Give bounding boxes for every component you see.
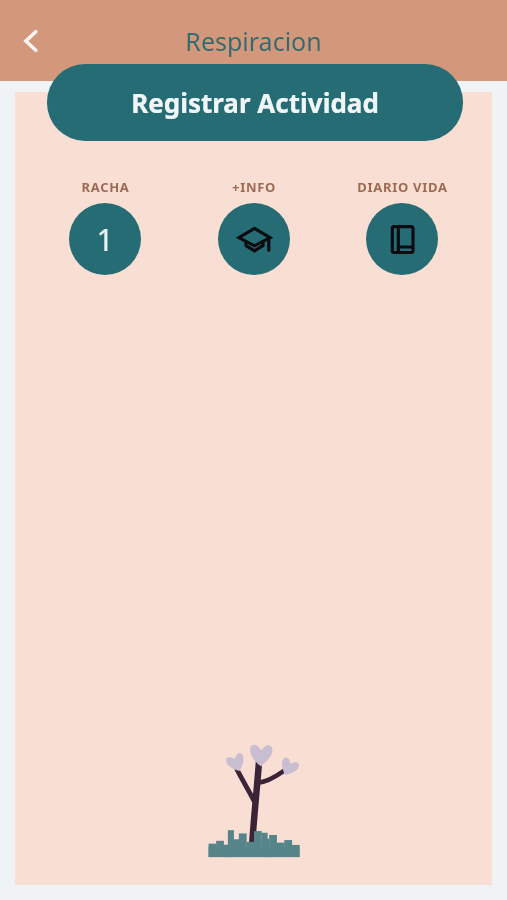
staticText: Respiracion [185,24,322,58]
staticText: DIARIO VIDA [357,178,448,196]
button[interactable]: +INFO [194,178,314,275]
staticText: 1 [96,219,114,260]
staticText: RACHA [81,178,130,196]
button[interactable]: RACHA [45,178,165,275]
staticText: +INFO [232,178,276,196]
button[interactable]: Back [4,14,58,68]
other: More info [236,221,273,258]
staticText: Registrar Actividad [131,85,379,120]
button[interactable]: Registrar Actividad [47,64,463,141]
other: Life diary [385,222,420,257]
button[interactable]: DIARIO VIDA [342,178,462,275]
